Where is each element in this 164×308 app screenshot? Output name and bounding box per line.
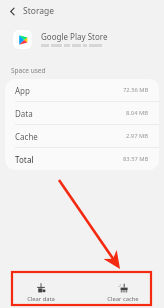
button[interactable]: Back bbox=[5, 4, 19, 18]
button[interactable]: Clear cache bbox=[82, 280, 164, 306]
button[interactable]: Total bbox=[5, 148, 159, 170]
staticText: Storage bbox=[23, 5, 55, 17]
staticText: Space used bbox=[11, 66, 46, 75]
staticText: Google Play Store bbox=[41, 31, 108, 42]
staticText: Cache bbox=[15, 131, 38, 142]
button[interactable]: Clear data bbox=[0, 280, 82, 306]
staticText: Total bbox=[15, 154, 34, 165]
button[interactable]: Data bbox=[5, 102, 159, 125]
staticText: Data bbox=[15, 108, 33, 119]
staticText: 2.97 MB bbox=[126, 132, 149, 140]
button[interactable]: Google Play Store bbox=[0, 22, 164, 56]
staticText: 72.56 MB bbox=[123, 86, 149, 94]
button[interactable]: Cache bbox=[5, 125, 159, 148]
staticText: Clear cache bbox=[107, 295, 139, 303]
staticText: 83.57 MB bbox=[123, 155, 149, 163]
staticText: 8.04 MB bbox=[126, 109, 149, 117]
staticText: App bbox=[15, 85, 30, 96]
button[interactable]: App bbox=[5, 79, 159, 102]
staticText: Clear data bbox=[27, 295, 55, 303]
